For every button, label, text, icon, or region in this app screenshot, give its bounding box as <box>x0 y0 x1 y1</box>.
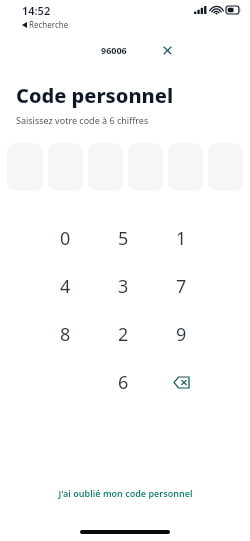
staticText: 7 <box>176 274 187 299</box>
button[interactable]: 6 <box>94 358 152 406</box>
staticText: J'ai oublié mon code personnel <box>58 487 193 499</box>
button[interactable]: 4 <box>36 262 94 310</box>
staticText: 8 <box>60 322 71 347</box>
staticText: 0 <box>60 226 71 251</box>
staticText: Recherche <box>29 19 69 30</box>
button[interactable]: 5 <box>94 214 152 262</box>
button[interactable]: 7 <box>152 262 210 310</box>
button[interactable]: 0 <box>36 214 94 262</box>
button[interactable]: 1 <box>152 214 210 262</box>
staticText: 14:52 <box>22 3 51 18</box>
button[interactable]: 96006 <box>72 38 178 62</box>
staticText: 6 <box>118 370 129 395</box>
staticText: 96006 <box>101 44 127 56</box>
staticText: 5 <box>118 226 129 251</box>
staticText: 2 <box>118 322 129 347</box>
button[interactable]: 8 <box>36 310 94 358</box>
staticText: 4 <box>60 274 71 299</box>
staticText: Saisissez votre code à 6 chiffres <box>16 114 149 126</box>
staticText: Code personnel <box>16 82 174 109</box>
staticText: 3 <box>118 274 129 299</box>
button[interactable]: 3 <box>94 262 152 310</box>
button[interactable]: J'ai oublié mon code personnel <box>48 483 203 503</box>
staticText: 9 <box>176 322 187 347</box>
staticText: 1 <box>176 226 187 251</box>
button[interactable]: 9 <box>152 310 210 358</box>
button[interactable]: Effacer <box>156 39 178 61</box>
button[interactable]: Supprimer <box>152 358 210 406</box>
button[interactable]: 2 <box>94 310 152 358</box>
